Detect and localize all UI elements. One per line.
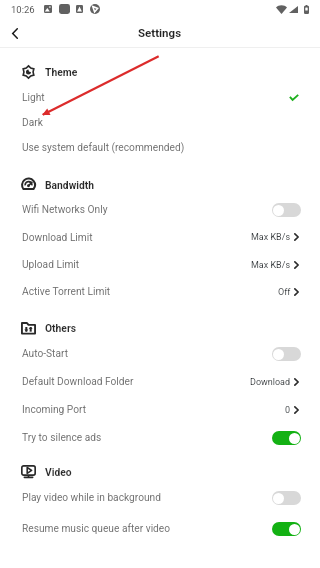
staticText: Auto-Start xyxy=(22,348,69,360)
button[interactable]: Back xyxy=(3,21,27,45)
staticText: Max KB/s xyxy=(251,232,291,243)
button[interactable]: Resume music queue after video xyxy=(0,513,320,544)
button[interactable]: Try to silence ads xyxy=(272,431,301,445)
staticText: 10:26 xyxy=(11,4,35,15)
staticText: Incoming Port xyxy=(22,404,87,416)
staticText: Download Limit xyxy=(22,232,93,244)
staticText: Dark xyxy=(22,117,43,129)
staticText: Use system default (recommended) xyxy=(22,142,185,154)
button[interactable]: Light xyxy=(0,85,320,110)
button[interactable]: Download Limit xyxy=(0,224,320,251)
staticText: Max KB/s xyxy=(251,260,291,271)
button[interactable]: Resume music queue after video xyxy=(272,522,301,536)
staticText: Wifi Networks Only xyxy=(22,204,108,216)
button[interactable]: Try to silence ads xyxy=(0,424,320,452)
staticText: Upload Limit xyxy=(22,259,80,271)
button[interactable]: Use system default (recommended) xyxy=(0,135,320,160)
button[interactable]: Play video while in background xyxy=(272,491,301,505)
button[interactable]: Default Download Folder xyxy=(0,368,320,396)
button[interactable]: Auto-Start xyxy=(0,340,320,368)
staticText: Light xyxy=(22,92,45,104)
staticText: Video xyxy=(45,466,72,478)
button[interactable]: Upload Limit xyxy=(0,251,320,279)
button[interactable]: Incoming Port xyxy=(0,396,320,424)
staticText: Others xyxy=(45,322,76,334)
staticText: Theme xyxy=(45,66,78,78)
staticText: Try to silence ads xyxy=(22,432,102,444)
button[interactable]: Dark xyxy=(0,110,320,135)
staticText: Settings xyxy=(138,26,182,39)
button[interactable]: Wifi Networks Only xyxy=(0,196,320,224)
staticText: Resume music queue after video xyxy=(22,523,171,535)
staticText: Download xyxy=(250,377,291,388)
button[interactable]: Active Torrent Limit xyxy=(0,279,320,305)
staticText: Active Torrent Limit xyxy=(22,286,111,298)
staticText: 0 xyxy=(285,405,291,416)
button[interactable]: Auto-Start xyxy=(272,347,301,361)
button[interactable]: Play video while in background xyxy=(0,482,320,513)
staticText: Play video while in background xyxy=(22,492,161,504)
staticText: Bandwidth xyxy=(45,179,94,191)
staticText: Default Download Folder xyxy=(22,376,134,388)
button[interactable]: Wifi Networks Only xyxy=(272,203,301,217)
staticText: Off xyxy=(278,287,291,298)
